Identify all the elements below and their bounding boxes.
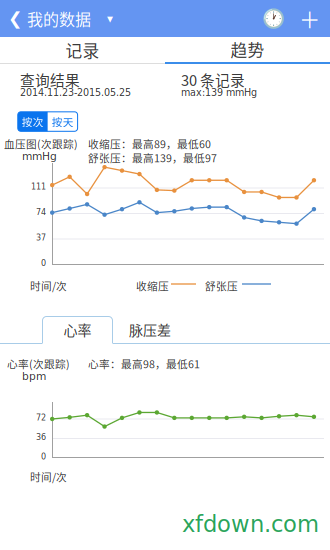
staticText: max:139 mmHg <box>181 87 257 98</box>
staticText: 时间/次 <box>30 278 67 293</box>
button[interactable]: 按天 <box>48 112 78 131</box>
staticText: bpm <box>22 370 46 382</box>
staticText: 72 <box>36 413 46 422</box>
staticText: 按天 <box>52 114 74 129</box>
staticText: 脉压差 <box>129 319 171 340</box>
staticText: xfdown.com <box>182 511 319 537</box>
staticText: 查询结果 <box>20 69 80 90</box>
staticText: 记录 <box>65 38 99 62</box>
staticText: 按次 <box>22 114 44 129</box>
staticText: 我的数据 <box>27 7 91 30</box>
staticText: 30 条记录 <box>181 69 245 90</box>
button[interactable]: 趋势 <box>165 37 330 64</box>
staticText: 趋势 <box>230 37 264 61</box>
staticText: mmHg <box>22 150 57 162</box>
staticText: 36 <box>36 432 46 442</box>
staticText: ▾ <box>107 11 113 25</box>
staticText: 2014.11.23-2015.05.25 <box>20 87 131 98</box>
staticText: 时间/次 <box>30 469 67 484</box>
button[interactable]: Switch data type <box>91 11 119 25</box>
button[interactable]: 脉压差 <box>113 316 187 343</box>
button[interactable]: 记录 <box>0 37 165 64</box>
staticText: 0 <box>41 452 46 461</box>
staticText: 血压图(次跟踪) <box>4 136 78 151</box>
staticText: 🕐 <box>262 8 285 29</box>
staticText: 74 <box>36 207 46 217</box>
button[interactable]: Add record <box>299 3 330 34</box>
button[interactable]: xfdown.com <box>0 0 330 550</box>
staticText: 37 <box>36 233 46 242</box>
staticText: 舒张压：最高139，最低97 <box>88 150 217 165</box>
staticText: 收缩压：最高89，最低60 <box>88 136 211 151</box>
staticText: 收缩压 <box>136 278 169 293</box>
staticText: 心率(次跟踪) <box>7 356 70 371</box>
staticText: 舒张压 <box>205 278 238 293</box>
staticText: 111 <box>31 182 46 191</box>
staticText: ＋ <box>299 3 320 34</box>
staticText: 0 <box>41 258 46 268</box>
button[interactable]: ❮ <box>0 7 91 30</box>
staticText: ❮ <box>8 8 23 29</box>
button[interactable]: History <box>262 8 299 29</box>
staticText: 心率：最高98，最低61 <box>88 356 200 371</box>
button[interactable]: 按次 <box>18 112 48 131</box>
button[interactable]: 心率 <box>42 316 113 343</box>
staticText: 心率 <box>63 319 91 340</box>
